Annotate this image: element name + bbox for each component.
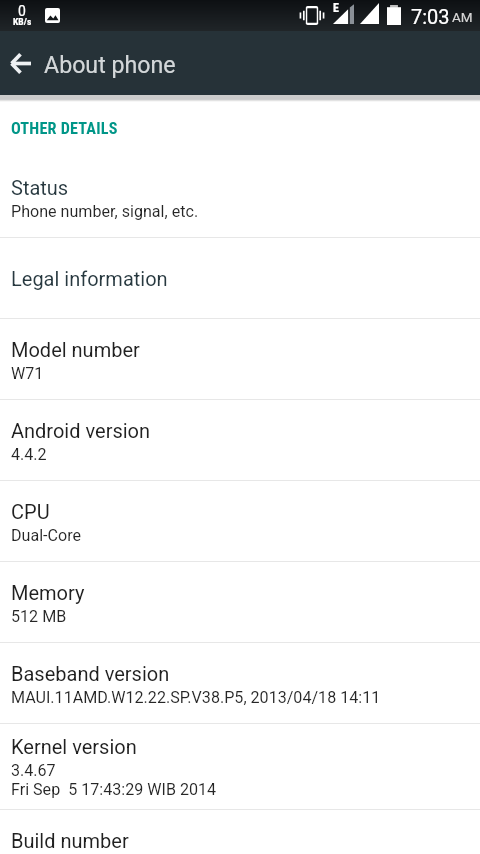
button[interactable]: Back [0, 31, 40, 95]
staticText: Phone number, signal, etc. [11, 202, 199, 221]
button[interactable]: Android version [0, 400, 480, 481]
staticText: 3.4.67 Fri Sep 5 17:43:29 WIB 2014 [11, 761, 217, 799]
staticText: AM [452, 9, 473, 25]
staticText: 4.4.2 [11, 445, 47, 464]
button[interactable]: Status [0, 157, 480, 238]
staticText: W71 [11, 364, 44, 383]
button[interactable]: Build number [0, 810, 480, 854]
button[interactable]: Baseband version [0, 643, 480, 724]
button[interactable]: Legal information [0, 238, 480, 319]
button[interactable]: CPU [0, 481, 480, 562]
staticText: Build number [11, 829, 129, 852]
staticText: MAUI.11AMD.W12.22.SP.V38.P5, 2013/04/18 … [11, 688, 381, 707]
staticText: OTHER DETAILS [11, 119, 118, 138]
staticText: Model number [11, 338, 140, 361]
staticText: Kernel version [11, 735, 137, 758]
staticText: CPU [11, 500, 50, 523]
staticText: E [333, 1, 339, 15]
staticText: About phone [44, 51, 176, 78]
staticText: Memory [11, 581, 85, 604]
staticText: KB/s [13, 16, 32, 27]
staticText: 512 MB [11, 607, 67, 626]
staticText: Baseband version [11, 662, 170, 685]
staticText: Dual-Core [11, 526, 82, 545]
staticText: Android version [11, 419, 151, 442]
button[interactable]: Kernel version [0, 724, 480, 810]
staticText: 7:03 [411, 5, 450, 28]
staticText: Status [11, 176, 69, 199]
staticText: Legal information [11, 267, 168, 290]
button[interactable]: Memory [0, 562, 480, 643]
button[interactable]: Model number [0, 319, 480, 400]
staticText: 0 [18, 3, 26, 19]
